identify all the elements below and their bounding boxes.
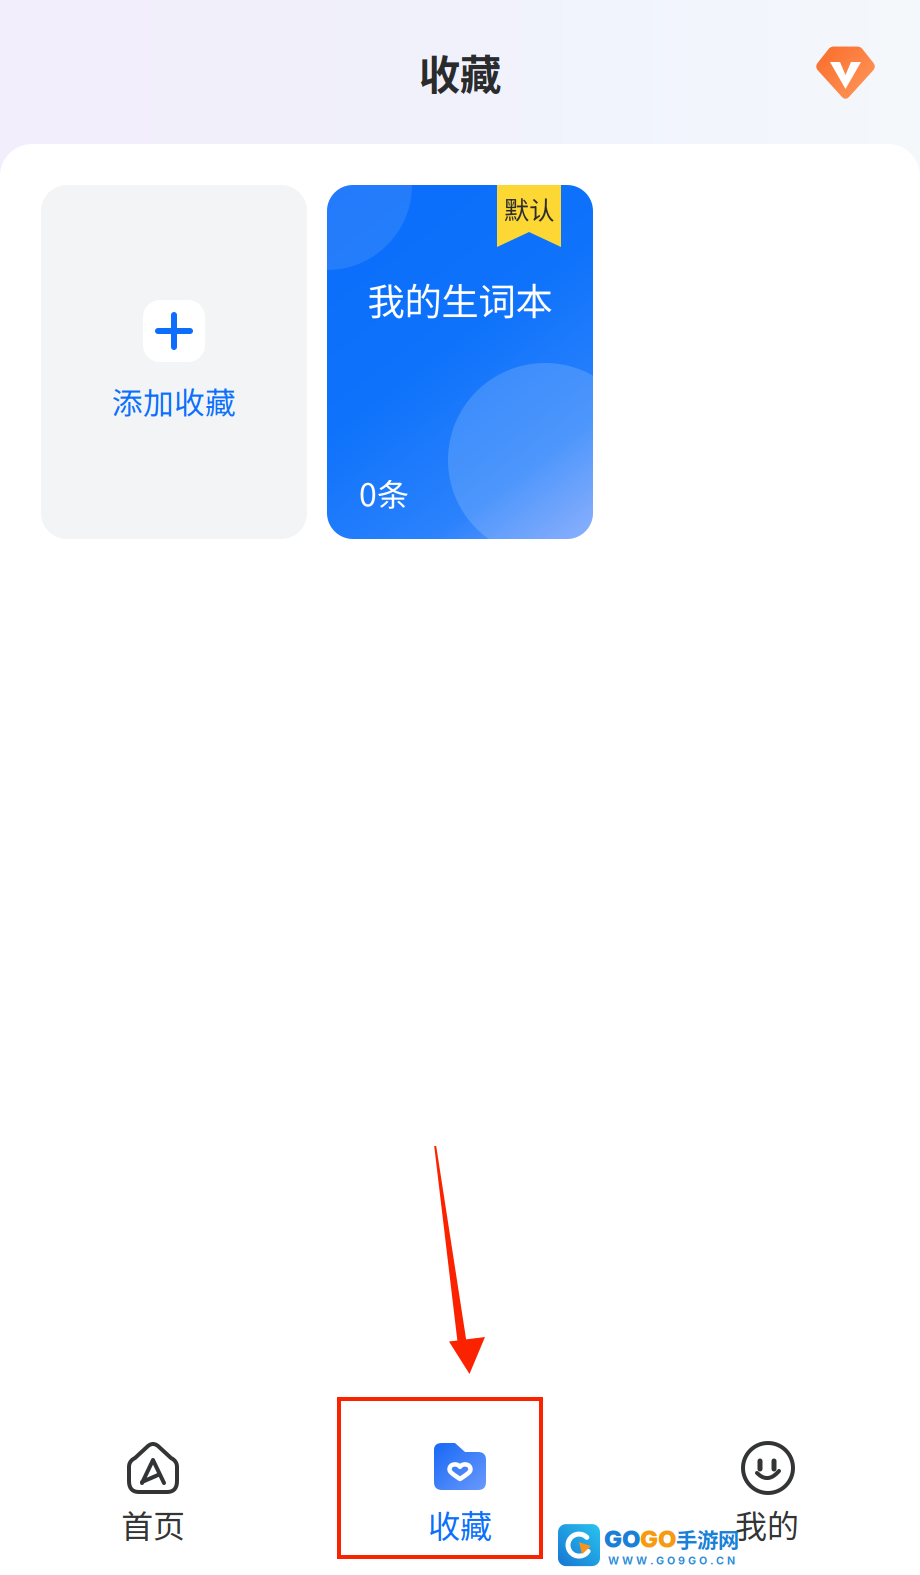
staticText: 我的	[735, 1501, 799, 1547]
staticText: 我的生词本	[367, 272, 552, 326]
staticText: GO	[640, 1524, 676, 1553]
staticText: 手游网	[676, 1523, 739, 1554]
staticText: 添加收藏	[112, 379, 236, 423]
staticText: GO	[604, 1524, 640, 1553]
button[interactable]: 添加收藏	[41, 185, 307, 539]
staticText: 收藏	[419, 42, 501, 102]
button[interactable]: 我的	[664, 1397, 870, 1575]
button[interactable]: 收藏	[357, 1397, 563, 1575]
staticText: 0条	[359, 470, 409, 516]
staticText: 收藏	[428, 1501, 492, 1547]
button[interactable]: VIP	[815, 44, 876, 100]
staticText: W W W . G O 9 G O . C N	[608, 1554, 735, 1567]
staticText: 首页	[121, 1501, 185, 1547]
button[interactable]: 首页	[50, 1397, 256, 1575]
button[interactable]: 默认	[327, 185, 593, 539]
staticText: 默认	[504, 190, 554, 227]
